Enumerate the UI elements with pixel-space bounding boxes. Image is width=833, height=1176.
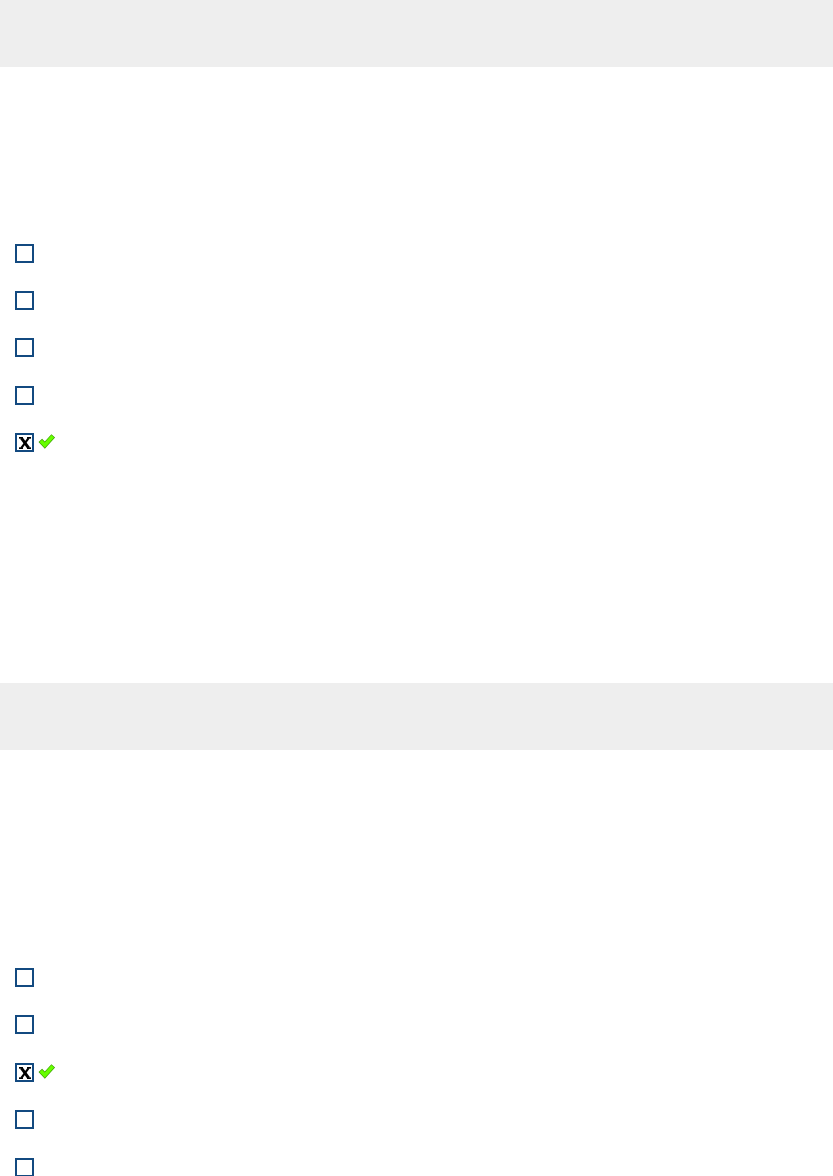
button[interactable]: Answer C <box>0 324 833 371</box>
button[interactable]: Answer B <box>0 1001 833 1048</box>
button[interactable]: Answer D <box>0 1096 833 1143</box>
button[interactable]: Answer D <box>0 372 833 419</box>
button[interactable]: Answer A <box>0 954 833 1001</box>
button[interactable]: Answer B <box>0 277 833 324</box>
button[interactable]: Answer C, selected, correct answer <box>0 1049 833 1096</box>
button[interactable]: Answer E, selected, correct answer <box>0 419 833 466</box>
button[interactable]: Answer A <box>0 230 833 277</box>
button[interactable]: Answer E <box>0 1144 833 1176</box>
